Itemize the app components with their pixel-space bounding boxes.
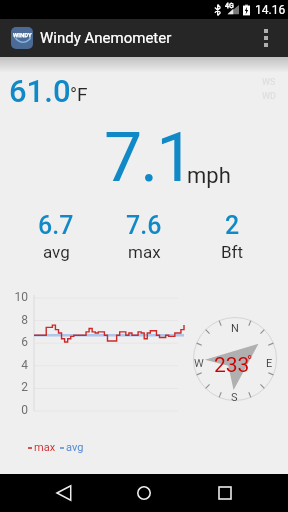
staticText: 7.1 <box>104 118 193 198</box>
staticText: WS <box>262 77 276 88</box>
staticText: N <box>231 322 239 335</box>
staticText: Bft <box>221 242 244 262</box>
staticText: 10 <box>0 290 28 304</box>
staticText: max <box>34 441 56 454</box>
button[interactable]: 6.7 <box>12 211 100 262</box>
button[interactable]: App icon <box>11 27 33 49</box>
staticText: 7.6 <box>126 211 162 240</box>
staticText: E <box>266 357 273 370</box>
staticText: 14.16 <box>255 3 286 17</box>
staticText: ° <box>247 353 253 369</box>
staticText: 6.7 <box>38 211 74 240</box>
staticText: 0 <box>0 403 28 417</box>
button[interactable]: 7.6 <box>100 211 188 262</box>
staticText: max <box>128 242 161 262</box>
button[interactable]: Back <box>45 474 83 512</box>
staticText: mph <box>187 163 231 189</box>
button[interactable]: More options <box>247 19 285 57</box>
staticText: 233 <box>214 353 250 378</box>
button[interactable]: 2 <box>188 211 276 262</box>
staticText: 61.0 <box>9 73 71 109</box>
staticText: 2 <box>225 211 240 240</box>
staticText: 6 <box>0 335 28 349</box>
staticText: Windy Anemometer <box>40 29 172 47</box>
staticText: S <box>231 391 238 404</box>
staticText: 4G <box>225 2 234 10</box>
staticText: °F <box>70 83 88 105</box>
staticText: 8 <box>0 313 28 327</box>
staticText: W <box>194 357 204 370</box>
button[interactable]: Recent apps <box>206 474 244 512</box>
staticText: WINDY <box>13 31 32 38</box>
staticText: avg <box>43 242 70 262</box>
staticText: WD <box>262 91 276 102</box>
staticText: 4 <box>0 358 28 372</box>
button[interactable]: Home <box>125 474 163 512</box>
staticText: 2 <box>0 380 28 394</box>
staticText: avg <box>66 441 84 454</box>
